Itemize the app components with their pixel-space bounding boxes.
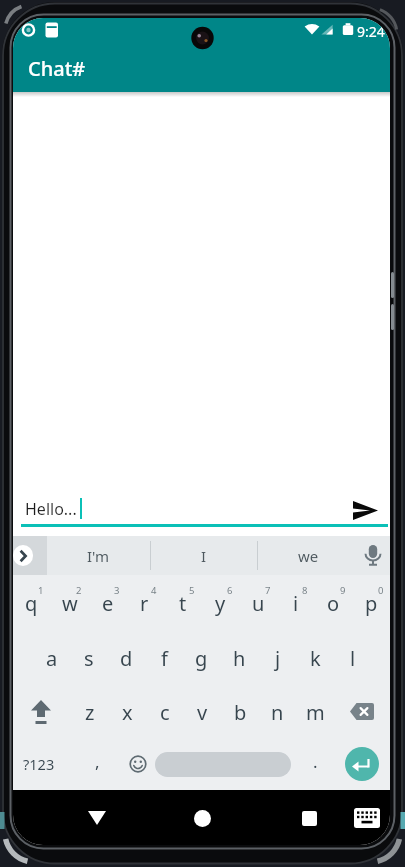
button[interactable]: g xyxy=(183,634,220,682)
button[interactable]: l xyxy=(334,634,371,682)
button[interactable]: a xyxy=(33,634,70,682)
staticText: n xyxy=(271,699,284,726)
button[interactable]: p xyxy=(353,579,390,627)
button[interactable]: I'm xyxy=(47,536,150,575)
staticText: . xyxy=(313,750,318,773)
button[interactable]: d xyxy=(108,634,145,682)
staticText: l xyxy=(350,645,356,672)
button[interactable]: m xyxy=(297,688,334,736)
button[interactable]: I xyxy=(151,536,257,575)
button[interactable]: b xyxy=(222,688,259,736)
staticText: a xyxy=(46,645,58,672)
button[interactable] xyxy=(182,798,222,838)
staticText: v xyxy=(197,699,208,726)
staticText: 7 xyxy=(265,584,271,597)
button[interactable] xyxy=(118,740,158,788)
staticText: p xyxy=(365,590,378,617)
staticText: w xyxy=(62,590,78,617)
staticText: u xyxy=(252,590,265,617)
staticText: y xyxy=(215,590,226,617)
staticText: 2 xyxy=(76,584,82,597)
staticText: 9:24 xyxy=(357,22,385,41)
staticText: 1 xyxy=(38,584,44,597)
staticText: we xyxy=(298,546,319,566)
button[interactable] xyxy=(155,752,291,777)
staticText: m xyxy=(306,699,325,726)
staticText: c xyxy=(160,699,170,726)
button[interactable]: i xyxy=(277,579,314,627)
button[interactable]: x xyxy=(109,688,146,736)
button[interactable]: o xyxy=(315,579,352,627)
button[interactable] xyxy=(289,798,329,838)
staticText: j xyxy=(275,645,281,672)
staticText: h xyxy=(233,645,246,672)
button[interactable] xyxy=(343,490,389,532)
staticText: 0 xyxy=(378,584,384,597)
button[interactable]: h xyxy=(221,634,258,682)
staticText: i xyxy=(293,590,299,617)
button[interactable]: y xyxy=(202,579,239,627)
button[interactable] xyxy=(13,536,47,575)
button[interactable]: , xyxy=(79,737,116,785)
staticText: , xyxy=(95,750,100,773)
staticText: I xyxy=(201,546,207,566)
button[interactable]: . xyxy=(297,737,334,785)
staticText: 9 xyxy=(340,584,346,597)
staticText: t xyxy=(179,590,187,617)
button[interactable]: ?123 xyxy=(15,740,63,788)
button[interactable]: r xyxy=(126,579,163,627)
button[interactable]: c xyxy=(146,688,183,736)
button[interactable]: q xyxy=(13,579,50,627)
staticText: z xyxy=(85,699,95,726)
button[interactable]: f xyxy=(146,634,183,682)
button[interactable] xyxy=(338,687,386,736)
button[interactable]: s xyxy=(70,634,107,682)
button[interactable] xyxy=(356,536,390,575)
staticText: g xyxy=(195,645,208,672)
button[interactable]: k xyxy=(297,634,334,682)
staticText: ?123 xyxy=(23,754,55,774)
staticText: e xyxy=(102,590,114,617)
staticText: 4 xyxy=(151,584,157,597)
button[interactable] xyxy=(17,687,65,736)
staticText: x xyxy=(122,699,133,726)
button[interactable] xyxy=(349,800,385,836)
button[interactable]: e xyxy=(89,579,126,627)
staticText: o xyxy=(327,590,340,617)
staticText: b xyxy=(234,699,247,726)
staticText: I'm xyxy=(87,546,110,566)
staticText: q xyxy=(25,590,38,617)
staticText: k xyxy=(310,645,321,672)
staticText: Chat# xyxy=(28,55,86,82)
staticText: 5 xyxy=(189,584,195,597)
button[interactable] xyxy=(77,798,117,838)
button[interactable]: t xyxy=(164,579,201,627)
staticText: 8 xyxy=(302,584,308,597)
staticText: s xyxy=(84,645,94,672)
staticText: r xyxy=(140,590,149,617)
button[interactable] xyxy=(345,747,379,781)
button[interactable]: v xyxy=(184,688,221,736)
staticText: Hello... xyxy=(25,498,77,520)
button[interactable]: we xyxy=(258,536,358,575)
staticText: f xyxy=(161,645,168,672)
button[interactable]: z xyxy=(71,688,108,736)
staticText: 3 xyxy=(114,584,120,597)
staticText: d xyxy=(120,645,133,672)
staticText: 6 xyxy=(227,584,233,597)
button[interactable]: u xyxy=(240,579,277,627)
button[interactable]: n xyxy=(259,688,296,736)
button[interactable]: w xyxy=(51,579,88,627)
button[interactable]: j xyxy=(259,634,296,682)
